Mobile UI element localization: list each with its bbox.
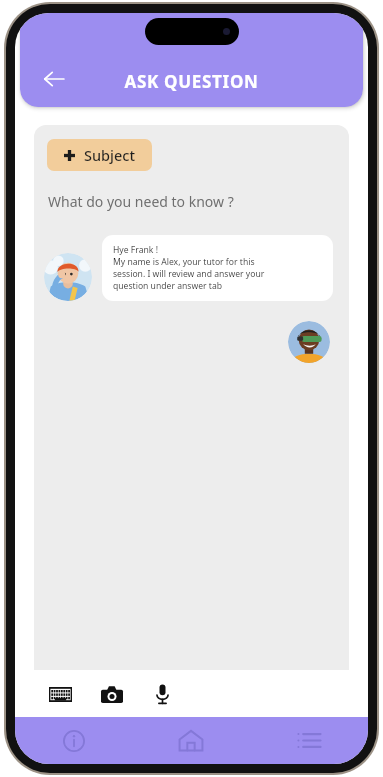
button[interactable]: Subject [47,139,152,171]
staticText: Hye Frank ! My name is Alex, your tutor … [113,244,265,292]
staticText: Subject [84,145,135,165]
button[interactable]: List [250,717,368,764]
button[interactable]: Microphone [144,676,180,712]
button[interactable]: Back [34,59,74,99]
button[interactable]: Home [132,717,250,764]
staticText: What do you need to know ? [48,192,234,211]
button[interactable]: Camera [94,676,130,712]
button[interactable]: Keyboard [42,676,78,712]
button[interactable]: Info [15,717,132,764]
staticText: ASK QUESTION [124,70,259,93]
button[interactable]: Hye Frank ! My name is Alex, your tutor … [102,235,333,301]
